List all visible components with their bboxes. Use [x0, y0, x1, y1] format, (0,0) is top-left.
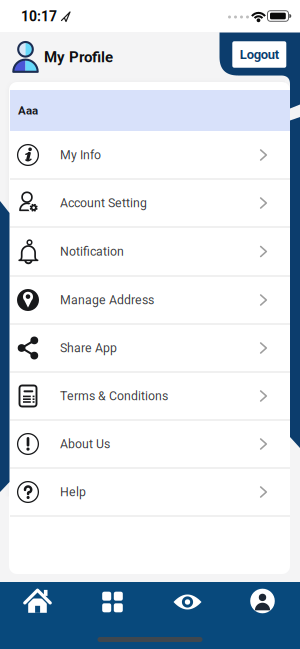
staticText: About Us — [60, 437, 110, 451]
button[interactable]: Share App — [10, 324, 290, 372]
staticText: Account Setting — [60, 196, 147, 210]
staticText: Terms & Conditions — [60, 389, 168, 403]
staticText: My Profile — [44, 48, 113, 66]
button[interactable]: Account Setting — [10, 179, 290, 227]
button[interactable]: Home — [0, 582, 75, 649]
button[interactable]: Notification — [10, 227, 290, 275]
staticText: My Info — [60, 148, 101, 162]
button[interactable]: Terms & Conditions — [10, 372, 290, 420]
button[interactable]: Logout — [232, 41, 286, 68]
staticText: Notification — [60, 244, 124, 259]
button[interactable]: Categories — [75, 582, 150, 649]
staticText: Help — [60, 485, 86, 499]
staticText: Aaa — [18, 104, 38, 117]
staticText: 10:17 — [21, 8, 57, 25]
button[interactable]: Manage Address — [10, 276, 290, 324]
staticText: Share App — [60, 341, 117, 355]
staticText: Logout — [240, 47, 279, 62]
staticText: Manage Address — [60, 293, 154, 307]
button[interactable]: Profile — [225, 582, 300, 649]
button[interactable]: About Us — [10, 420, 290, 468]
button[interactable]: My Info — [10, 131, 290, 179]
button[interactable]: Help — [10, 468, 290, 516]
button[interactable]: Browse — [150, 582, 225, 649]
